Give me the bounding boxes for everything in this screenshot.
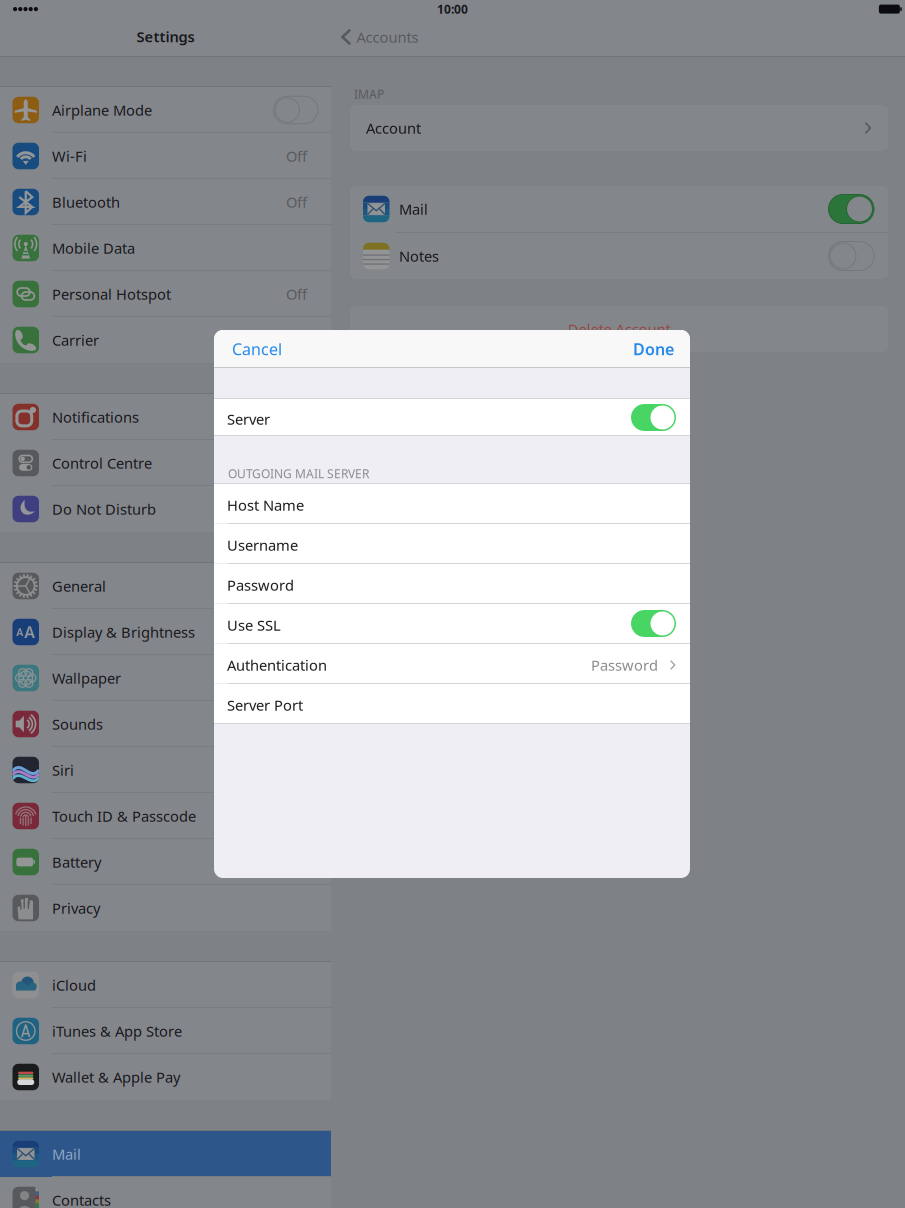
button[interactable]: Host Name: [214, 484, 690, 523]
staticText: Host Name: [227, 495, 304, 515]
staticText: OUTGOING MAIL SERVER: [228, 465, 369, 481]
staticText: Off: [286, 146, 307, 166]
staticText: Privacy: [52, 898, 100, 918]
staticText: Siri: [52, 760, 74, 780]
staticText: Battery: [52, 852, 101, 872]
button[interactable]: Authentication: [214, 644, 690, 683]
button[interactable]: Password: [214, 564, 690, 603]
staticText: Carrier: [52, 330, 99, 350]
button[interactable]: Wallpaper: [0, 655, 331, 701]
button[interactable]: Siri: [0, 747, 331, 793]
button[interactable]: Privacy: [0, 885, 331, 931]
staticText: Mail: [52, 1144, 81, 1164]
staticText: Contacts: [52, 1190, 111, 1208]
button[interactable]: Wallet & Apple Pay: [0, 1054, 331, 1100]
staticText: Do Not Disturb: [52, 499, 156, 519]
button[interactable]: Notes: [350, 233, 888, 279]
button[interactable]: Touch ID & Passcode: [0, 793, 331, 839]
staticText: Cancel: [232, 338, 282, 360]
staticText: Account: [366, 118, 421, 138]
button[interactable]: Mail: [0, 1131, 331, 1177]
button[interactable]: Sounds: [0, 701, 331, 747]
button[interactable]: Account: [350, 105, 888, 151]
button[interactable]: Do Not Disturb: [0, 486, 331, 532]
staticText: Display & Brightness: [52, 622, 195, 642]
staticText: General: [52, 576, 106, 596]
button[interactable]: Bluetooth: [0, 179, 331, 225]
staticText: Sounds: [52, 714, 103, 734]
button[interactable]: iCloud: [0, 962, 331, 1008]
button[interactable]: Battery: [0, 839, 331, 885]
button[interactable]: General: [0, 563, 331, 609]
staticText: Username: [227, 535, 298, 555]
staticText: iTunes & App Store: [52, 1021, 182, 1041]
staticText: Delete Account: [567, 319, 670, 339]
staticText: 10:00: [437, 1, 468, 17]
staticText: Off: [286, 192, 307, 212]
staticText: Wi-Fi: [52, 146, 87, 166]
staticText: Use SSL: [227, 615, 281, 635]
button[interactable]: Done: [621, 330, 690, 368]
button[interactable]: Username: [214, 524, 690, 563]
staticText: Mail: [399, 199, 428, 219]
staticText: Password: [591, 655, 658, 675]
button[interactable]: Wi-Fi: [0, 133, 331, 179]
button[interactable]: Control Centre: [0, 440, 331, 486]
button[interactable]: Notifications: [0, 394, 331, 440]
staticText: Bluetooth: [52, 192, 120, 212]
button[interactable]: Contacts: [0, 1177, 331, 1208]
staticText: Off: [286, 284, 307, 304]
staticText: Mobile Data: [52, 238, 135, 258]
button[interactable]: Accounts: [331, 21, 427, 53]
button[interactable]: Personal Hotspot: [0, 271, 331, 317]
button[interactable]: Use SSL: [214, 604, 690, 643]
staticText: Personal Hotspot: [52, 284, 171, 304]
staticText: Touch ID & Passcode: [52, 806, 196, 826]
staticText: Wallpaper: [52, 668, 121, 688]
button[interactable]: Mail: [350, 186, 888, 232]
button[interactable]: Server: [214, 399, 690, 436]
button[interactable]: Carrier: [0, 317, 331, 363]
staticText: A: [16, 625, 23, 639]
staticText: Notifications: [52, 407, 139, 427]
staticText: Server Port: [227, 695, 303, 715]
staticText: A: [24, 621, 35, 643]
staticText: IMAP: [354, 86, 384, 102]
staticText: Accounts: [357, 27, 419, 47]
button[interactable]: Cancel: [214, 330, 294, 368]
staticText: Airplane Mode: [52, 100, 152, 120]
staticText: Wallet & Apple Pay: [52, 1067, 180, 1087]
staticText: Password: [227, 575, 294, 595]
staticText: Control Centre: [52, 453, 152, 473]
staticText: Done: [633, 338, 674, 360]
button[interactable]: Server Port: [214, 684, 690, 723]
staticText: Authentication: [227, 655, 327, 675]
staticText: Server: [227, 409, 270, 429]
staticText: Settings: [136, 27, 194, 46]
button[interactable]: iTunes & App Store: [0, 1008, 331, 1054]
button[interactable]: Mobile Data: [0, 225, 331, 271]
button[interactable]: Airplane Mode: [0, 87, 331, 133]
button[interactable]: Delete Account: [350, 306, 888, 352]
staticText: iCloud: [52, 975, 96, 995]
staticText: Notes: [399, 246, 439, 266]
button[interactable]: A: [0, 609, 331, 655]
